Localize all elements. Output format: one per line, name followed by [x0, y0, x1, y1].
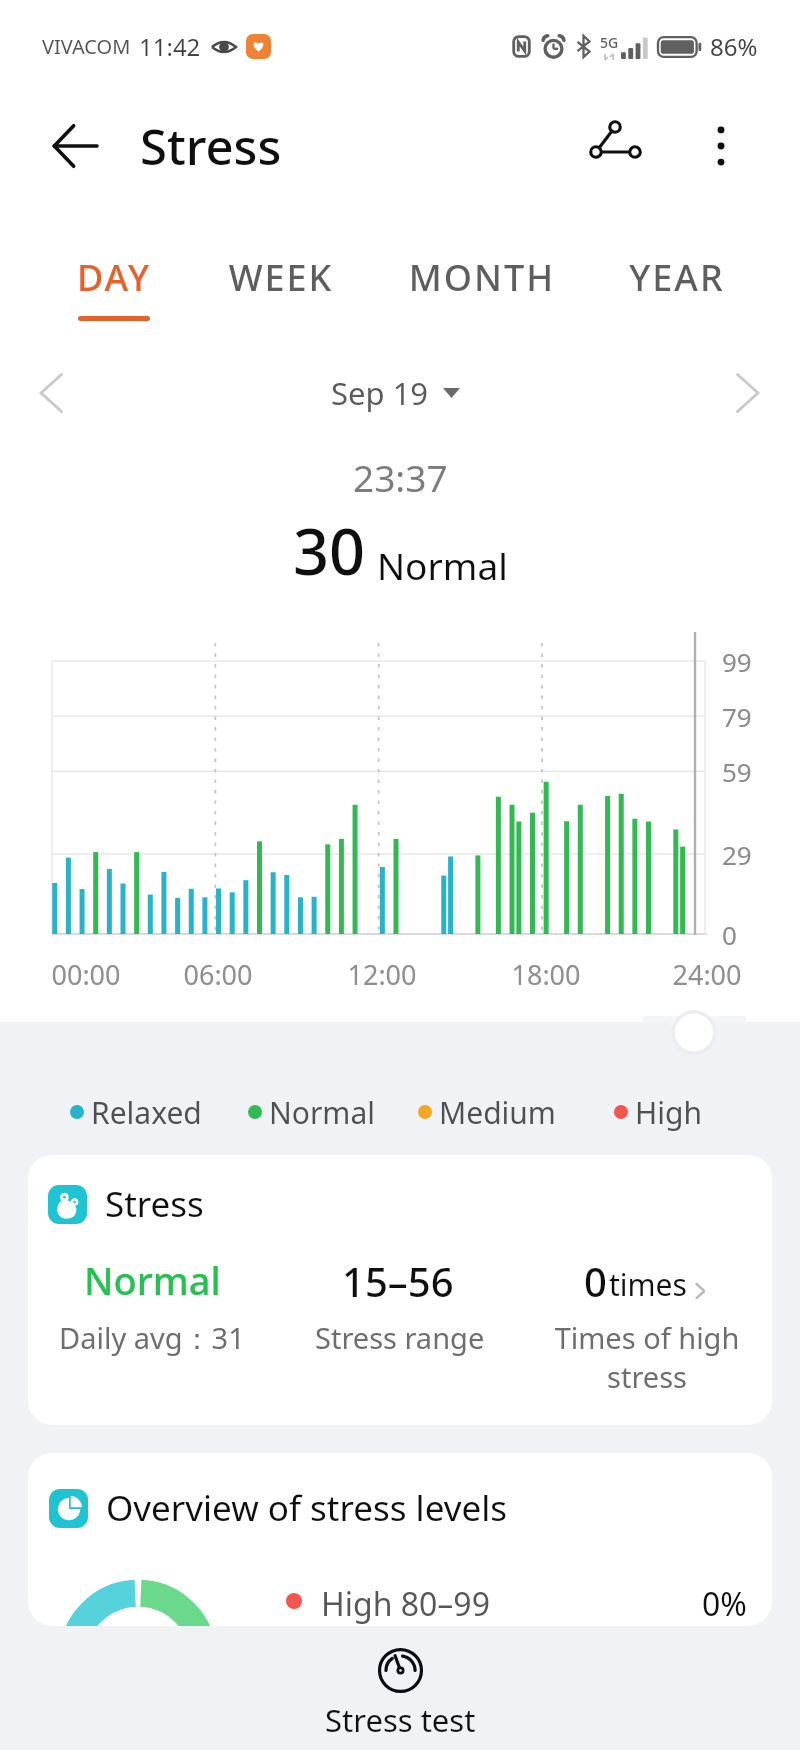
staticText: 12:00: [332, 956, 432, 993]
button[interactable]: More options: [681, 106, 761, 186]
staticText: Stress range: [315, 1318, 485, 1357]
button[interactable]: Sep 19: [331, 361, 460, 425]
staticText: 86%: [710, 30, 758, 63]
button[interactable]: Share: [575, 106, 655, 186]
staticText: 11:42: [139, 30, 201, 63]
button[interactable]: WEEK: [201, 248, 361, 358]
staticText: Normal: [84, 1254, 221, 1306]
staticText: 23:37: [353, 452, 448, 502]
button[interactable]: Previous day: [22, 363, 82, 423]
button[interactable]: DAY: [34, 248, 194, 358]
staticText: VIVACOM: [42, 33, 131, 60]
button[interactable]: Next day: [717, 363, 777, 423]
staticText: Stress: [105, 1180, 204, 1228]
staticText: DAY: [34, 253, 194, 302]
staticText: Daily avg：31: [59, 1318, 245, 1358]
staticText: 99: [722, 644, 752, 679]
staticText: 24:00: [657, 956, 757, 993]
staticText: 5G: [600, 33, 619, 52]
staticText: Overview of stress levels: [106, 1484, 507, 1532]
staticText: Times of high stress: [517, 1318, 772, 1396]
staticText: 30: [293, 508, 366, 594]
button[interactable]: Overview of stress levels: [28, 1453, 772, 1626]
button[interactable]: MONTH: [402, 248, 562, 358]
staticText: MONTH: [402, 253, 562, 302]
staticText: Normal: [269, 1092, 375, 1133]
button[interactable]: Back: [43, 114, 107, 178]
staticText: High: [635, 1092, 702, 1133]
staticText: Sep 19: [331, 372, 429, 414]
staticText: Stress: [140, 113, 282, 180]
staticText: 00:00: [36, 956, 136, 993]
button[interactable]: Stress: [28, 1155, 772, 1425]
staticText: 06:00: [168, 956, 268, 993]
staticText: 29: [722, 837, 752, 872]
button[interactable]: Stress test: [325, 1626, 476, 1741]
staticText: Stress test: [325, 1699, 476, 1741]
staticText: times: [609, 1264, 687, 1305]
staticText: WEEK: [201, 253, 361, 302]
staticText: Relaxed: [91, 1092, 202, 1133]
staticText: 18:00: [496, 956, 596, 993]
staticText: High 80–99: [321, 1582, 490, 1626]
staticText: Normal: [377, 540, 508, 590]
staticText: 0: [584, 1254, 607, 1308]
button[interactable]: YEAR: [597, 248, 757, 358]
staticText: YEAR: [597, 253, 757, 302]
staticText: 15–56: [342, 1254, 454, 1308]
staticText: 0: [722, 917, 737, 952]
staticText: Medium: [439, 1092, 556, 1133]
staticText: 59: [722, 754, 752, 789]
staticText: 0%: [702, 1582, 747, 1626]
staticText: 79: [722, 699, 752, 734]
